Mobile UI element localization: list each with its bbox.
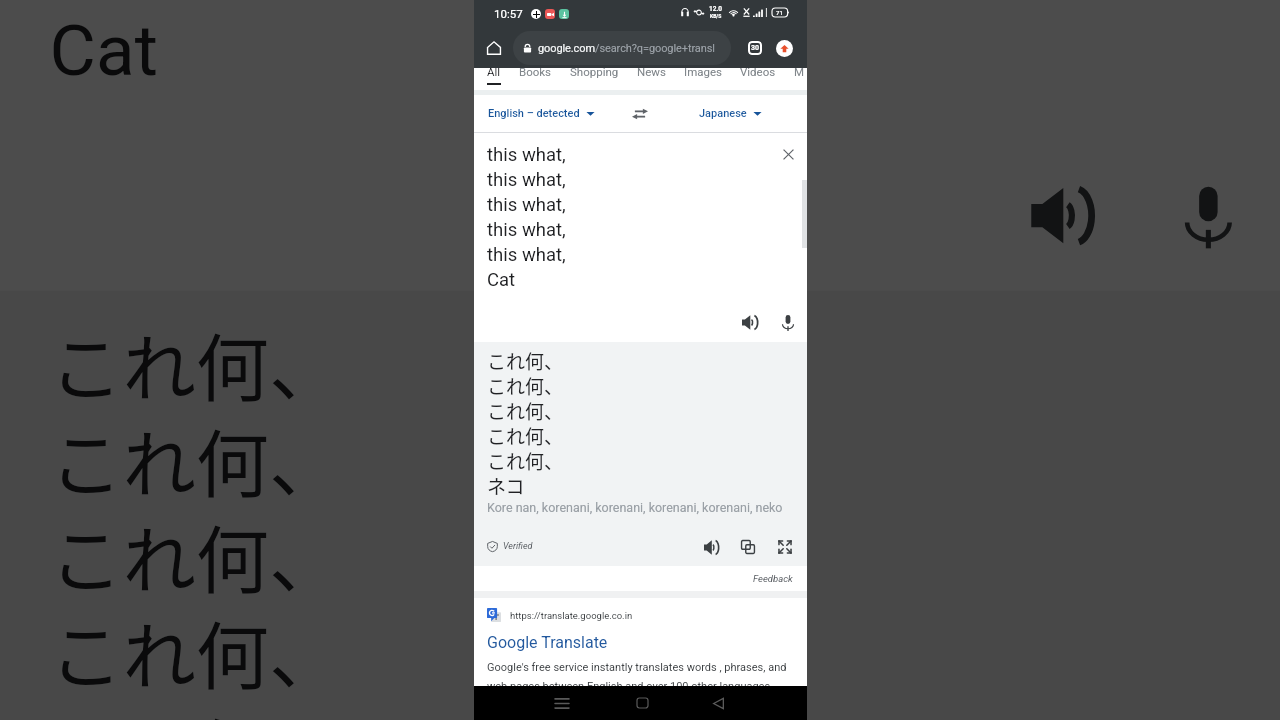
button[interactable]: Expand	[773, 535, 797, 559]
staticText: All	[487, 65, 501, 78]
button[interactable]: Google Translate	[487, 633, 608, 652]
staticText: Google's free service instantly translat…	[487, 661, 787, 686]
button[interactable]: Listen	[1012, 164, 1112, 264]
staticText: https://translate.google.co.in	[510, 610, 633, 621]
staticText: News	[637, 65, 666, 78]
staticText: Videos	[740, 65, 776, 78]
button[interactable]: M	[794, 65, 807, 90]
button[interactable]: Recents	[548, 689, 576, 717]
button[interactable]: Feedback	[753, 573, 793, 584]
button[interactable]: Japanese	[699, 107, 762, 120]
staticText: 10:57	[494, 7, 523, 20]
button[interactable]: English – detected	[488, 107, 595, 120]
button[interactable]: Videos	[740, 65, 794, 90]
button[interactable]: Home	[482, 36, 506, 60]
button[interactable]: Tabs	[744, 37, 766, 59]
staticText: this what, this what, this what, this wh…	[487, 144, 566, 290]
staticText: Verified	[503, 541, 533, 552]
button[interactable]: Clear	[775, 141, 801, 167]
button[interactable]: Shopping	[570, 65, 637, 90]
button[interactable]: Copy	[736, 535, 760, 559]
staticText: Kore nan, korenani, korenani, korenani, …	[487, 500, 783, 515]
button[interactable]: All	[487, 65, 519, 90]
button[interactable]: Microphone	[775, 310, 801, 336]
staticText: Japanese	[699, 107, 747, 120]
button[interactable]: Downloads	[776, 40, 793, 57]
button[interactable]: Swap languages	[628, 102, 652, 126]
button[interactable]: Images	[684, 65, 740, 90]
button[interactable]: google.com/search?q=google+transl	[513, 31, 731, 65]
staticText: google.com/search?q=google+transl	[538, 42, 715, 55]
staticText: Shopping	[570, 65, 619, 78]
button[interactable]: Books	[519, 65, 570, 90]
staticText: KB/S	[710, 13, 722, 19]
staticText: this what, this what, this what, this wh…	[49, 0, 354, 90]
staticText: Images	[684, 65, 722, 78]
staticText: 30	[751, 44, 760, 52]
button[interactable]: News	[637, 65, 684, 90]
staticText: English – detected	[488, 107, 580, 120]
staticText: 12.0	[709, 5, 723, 13]
staticText: 71	[776, 9, 783, 16]
button[interactable]: Microphone	[1158, 167, 1258, 268]
button[interactable]: Back	[704, 689, 732, 717]
button[interactable]: Listen	[737, 309, 763, 335]
button[interactable]: Home	[628, 689, 656, 717]
staticText: Books	[519, 65, 552, 78]
button[interactable]: Listen	[699, 535, 723, 559]
staticText: これ何、 これ何、 これ何、 これ何、 これ何、 ネコ	[487, 347, 564, 499]
staticText: これ何、 これ何、 これ何、 これ何、 これ何、 ネコ	[49, 310, 346, 720]
